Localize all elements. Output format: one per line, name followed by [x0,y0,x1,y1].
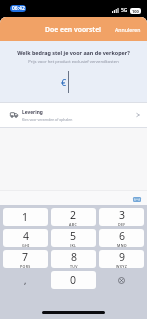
staticText: 1 [22,210,29,224]
button[interactable]: Levering [0,103,147,127]
button[interactable]: 3 [99,208,144,226]
staticText: 0 [70,273,77,287]
staticText: JKL [70,243,77,247]
button[interactable]: 0 [51,271,96,289]
staticText: 5 [70,229,77,243]
staticText: 100 [132,9,139,14]
staticText: Welk bedrag stel je voor aan de verkoper… [5,49,142,56]
staticText: Kies voor verzenden of ophalen [22,117,73,122]
staticText: 7 [22,250,29,264]
staticText: 8 [71,250,78,264]
staticText: PQRS [20,264,31,268]
staticText: Doe een voorstel [45,25,102,34]
staticText: GHI [22,243,30,247]
button[interactable]: 6 [99,229,144,247]
button[interactable]: 7 [3,250,48,268]
button[interactable]: 4 [3,229,48,247]
staticText: 5G [121,7,128,14]
staticText: 9 [119,250,126,264]
button[interactable]: Wissen [99,271,144,289]
staticText: TUV [70,264,78,268]
staticText: 4 [23,229,30,243]
staticText: 6 [119,229,126,243]
staticText: 06:42 [12,5,25,12]
button[interactable]: Toetsenbord verbergen [133,197,141,203]
button[interactable]: 1 [3,208,48,226]
staticText: Levering [22,109,43,116]
button[interactable]: , [3,271,48,289]
staticText: 2 [70,208,77,222]
button[interactable]: 5 [51,229,96,247]
staticText: DEF [118,222,126,226]
button[interactable]: 9 [99,250,144,268]
button[interactable]: Annuleren [115,26,147,33]
button[interactable]: 2 [51,208,96,226]
staticText: Prijs voor het product exclusief verzend… [5,59,142,65]
staticText: , [24,274,27,286]
staticText: 3 [119,208,126,222]
staticText: WXYZ [116,264,128,268]
staticText: ABC [69,222,78,226]
staticText: € [61,76,67,88]
staticText: MNO [117,243,127,247]
button[interactable]: 8 [51,250,96,268]
